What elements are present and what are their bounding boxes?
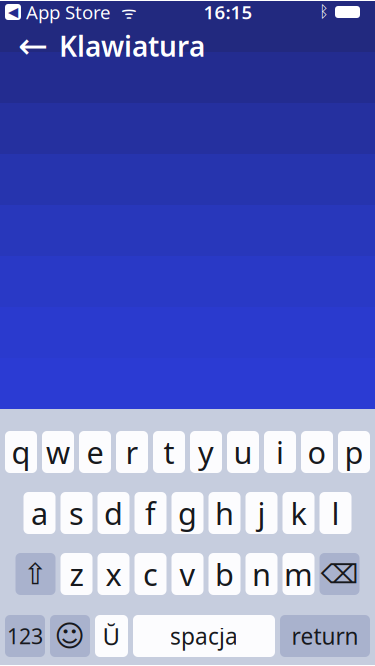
- staticText: g: [178, 493, 197, 533]
- staticText: b: [215, 554, 234, 594]
- staticText: q: [11, 432, 30, 472]
- button[interactable]: c: [134, 553, 166, 595]
- button[interactable]: q: [5, 431, 37, 473]
- staticText: ᛒ: [319, 4, 329, 20]
- staticText: k: [290, 493, 306, 533]
- staticText: t: [163, 432, 174, 472]
- button[interactable]: k: [282, 492, 314, 534]
- staticText: x: [105, 554, 121, 594]
- button[interactable]: w: [42, 431, 74, 473]
- staticText: Ŭ: [102, 620, 120, 652]
- staticText: s: [69, 493, 84, 533]
- button[interactable]: m: [282, 553, 314, 595]
- button[interactable]: j: [245, 492, 277, 534]
- staticText: ⌫: [320, 559, 358, 589]
- staticText: z: [69, 554, 83, 594]
- button[interactable]: e: [79, 431, 111, 473]
- staticText: ◀: [8, 4, 18, 19]
- staticText: v: [179, 554, 195, 594]
- staticText: App Store: [21, 0, 111, 24]
- staticText: o: [307, 432, 326, 472]
- button[interactable]: Emoji: [50, 615, 90, 657]
- staticText: ᯤ: [111, 0, 137, 23]
- staticText: spacja: [170, 621, 238, 651]
- button[interactable]: x: [97, 553, 129, 595]
- button[interactable]: l: [319, 492, 351, 534]
- button[interactable]: h: [208, 492, 240, 534]
- staticText: d: [104, 493, 123, 533]
- button[interactable]: return: [280, 615, 370, 657]
- button[interactable]: t: [153, 431, 185, 473]
- staticText: r: [125, 432, 138, 472]
- staticText: e: [86, 432, 103, 472]
- button[interactable]: s: [60, 492, 92, 534]
- staticText: u: [233, 432, 252, 472]
- staticText: i: [276, 432, 284, 472]
- button[interactable]: b: [208, 553, 240, 595]
- button[interactable]: i: [264, 431, 296, 473]
- button[interactable]: Shift: [15, 553, 55, 595]
- staticText: h: [215, 493, 234, 533]
- button[interactable]: r: [116, 431, 148, 473]
- button[interactable]: z: [60, 553, 92, 595]
- staticText: ☺: [54, 619, 85, 653]
- staticText: m: [284, 554, 313, 594]
- staticText: return: [291, 621, 358, 651]
- button[interactable]: a: [23, 492, 55, 534]
- button[interactable]: p: [338, 431, 370, 473]
- staticText: ⇧: [23, 557, 48, 591]
- staticText: n: [252, 554, 271, 594]
- button[interactable]: Dictation: [95, 615, 128, 657]
- button[interactable]: y: [190, 431, 222, 473]
- staticText: w: [46, 432, 70, 472]
- staticText: j: [257, 493, 265, 533]
- staticText: 16:15: [203, 0, 252, 24]
- button[interactable]: o: [301, 431, 333, 473]
- button[interactable]: f: [134, 492, 166, 534]
- button[interactable]: Delete: [319, 553, 359, 595]
- staticText: 123: [7, 622, 43, 650]
- button[interactable]: v: [171, 553, 203, 595]
- staticText: ←: [18, 26, 48, 66]
- staticText: p: [344, 432, 363, 472]
- button[interactable]: u: [227, 431, 259, 473]
- button[interactable]: n: [245, 553, 277, 595]
- staticText: Klawiatura: [59, 27, 205, 65]
- staticText: a: [31, 493, 48, 533]
- staticText: y: [198, 432, 214, 472]
- staticText: l: [331, 493, 339, 533]
- button[interactable]: Back: [13, 24, 53, 68]
- staticText: f: [145, 493, 156, 533]
- button[interactable]: g: [171, 492, 203, 534]
- button[interactable]: spacja: [133, 615, 275, 657]
- staticText: c: [143, 554, 158, 594]
- button[interactable]: 123: [5, 615, 45, 657]
- button[interactable]: d: [97, 492, 129, 534]
